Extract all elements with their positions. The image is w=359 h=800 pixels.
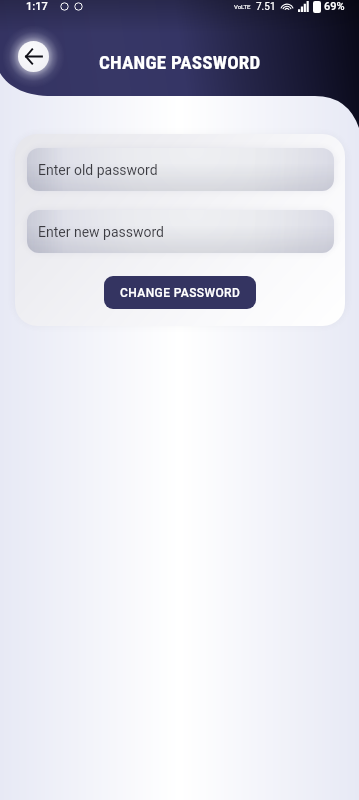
staticText: Enter new password (38, 224, 164, 240)
button[interactable]: CHANGE PASSWORD (104, 276, 256, 309)
staticText: 7.51 (256, 1, 276, 13)
staticText: Enter old password (38, 162, 158, 178)
button[interactable]: Enter old password (27, 148, 334, 191)
staticText: 1:17 (26, 0, 48, 13)
staticText: VoLTE (234, 3, 251, 10)
button[interactable]: Enter new password (27, 210, 334, 253)
button[interactable]: Back (18, 41, 49, 72)
staticText: CHANGE PASSWORD (120, 286, 241, 300)
staticText: CHANGE PASSWORD (99, 51, 261, 73)
staticText: 69% (324, 0, 345, 13)
